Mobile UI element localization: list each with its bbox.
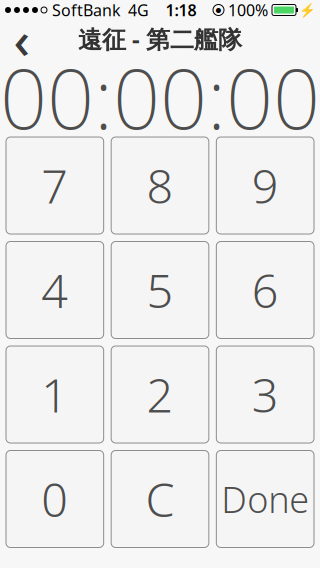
button[interactable]: 2 (111, 346, 209, 443)
staticText: ● (215, 6, 221, 14)
staticText: SoftBank (52, 0, 121, 21)
staticText: 100% (228, 0, 268, 21)
button[interactable]: 0 (6, 450, 104, 547)
button[interactable]: 8 (111, 137, 209, 234)
staticText: 1 (41, 363, 68, 425)
staticText: 9 (252, 154, 279, 216)
button[interactable]: Back (0, 20, 44, 58)
staticText: 1:18 (165, 0, 196, 21)
button[interactable]: 1 (6, 346, 104, 443)
staticText: 7 (41, 154, 68, 216)
staticText: 5 (146, 259, 173, 321)
button[interactable]: 9 (216, 137, 314, 234)
staticText: ‹ (13, 5, 30, 73)
button[interactable]: 6 (216, 241, 314, 338)
staticText: 8 (146, 154, 173, 216)
button[interactable]: Done (216, 450, 314, 547)
staticText: 00:00:00 (0, 42, 320, 152)
button[interactable]: 4 (6, 241, 104, 338)
staticText: Done (221, 475, 309, 523)
staticText: 遠征 - 第二艦隊 (78, 23, 242, 55)
staticText: C (145, 468, 174, 530)
staticText: ⚡ (299, 2, 316, 18)
button[interactable]: C (111, 450, 209, 547)
staticText: 6 (252, 259, 279, 321)
staticText: 2 (146, 363, 173, 425)
staticText: 4G (128, 0, 149, 21)
button[interactable]: 5 (111, 241, 209, 338)
button[interactable]: 7 (6, 137, 104, 234)
button[interactable]: 3 (216, 346, 314, 443)
staticText: 3 (252, 363, 279, 425)
staticText: 4 (41, 259, 68, 321)
staticText: 0 (41, 468, 68, 530)
